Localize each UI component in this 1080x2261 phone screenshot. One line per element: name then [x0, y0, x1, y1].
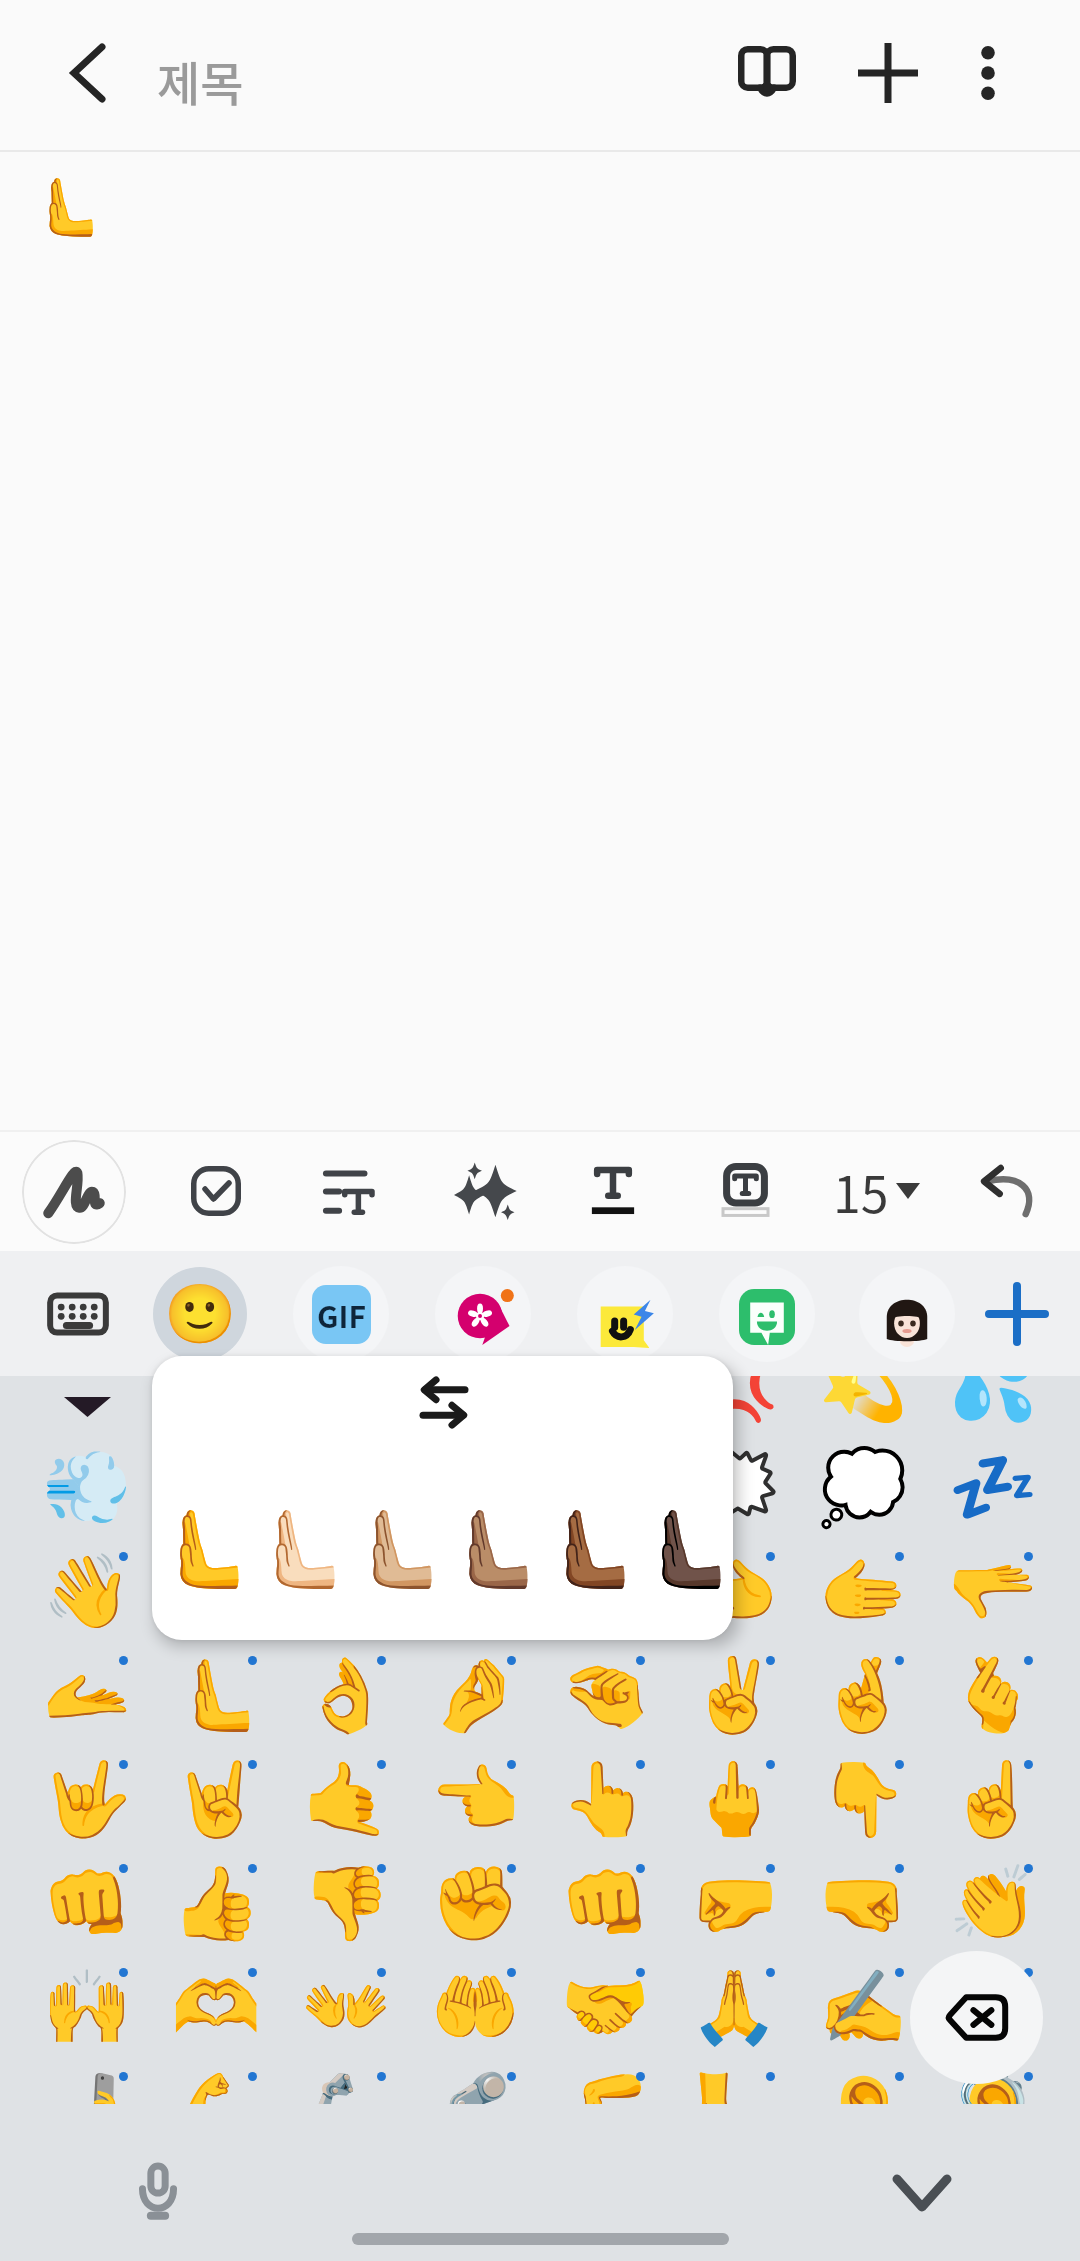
button[interactable]: 💦 [933, 1376, 1053, 1433]
button[interactable]: 🤘 [156, 1749, 276, 1849]
button[interactable]: 🫷🏻 [250, 1499, 346, 1599]
staticText: 🫶 [171, 1965, 261, 2049]
staticText: 🗯️ [689, 1445, 779, 1529]
button[interactable]: 👐 [286, 1957, 406, 2057]
button[interactable]: 🤚 [156, 1541, 276, 1641]
button[interactable]: 🖕 [674, 1749, 794, 1849]
button[interactable]: Checklist [168, 1143, 264, 1239]
button[interactable]: 🙏 [674, 1957, 794, 2057]
button[interactable]: 🫷 [156, 1645, 276, 1745]
button[interactable]: 🖖 [545, 1541, 665, 1641]
staticText: 15 [833, 1155, 889, 1227]
button[interactable]: 🫷🏽 [443, 1499, 539, 1599]
button[interactable]: 🦶 [674, 2061, 794, 2104]
button[interactable]: Voice input [110, 2144, 206, 2240]
staticText: 🙌 [42, 1965, 132, 2049]
button[interactable]: 🤏 [545, 1645, 665, 1745]
button[interactable]: 🤙 [286, 1749, 406, 1849]
button[interactable]: 👈 [415, 1749, 535, 1849]
button[interactable]: 🤞 [803, 1645, 923, 1745]
button[interactable]: ✍️ [803, 1957, 923, 2057]
button[interactable]: Keyboard [30, 1266, 126, 1362]
button[interactable]: 👇 [803, 1749, 923, 1849]
button[interactable]: AR Emoji [859, 1266, 955, 1362]
staticText: 🦵 [560, 2069, 650, 2104]
staticText: 👆 [560, 1757, 650, 1841]
button[interactable]: 👊 [27, 1853, 147, 1953]
button[interactable]: More options [936, 21, 1040, 125]
button[interactable]: 👊 [545, 1853, 665, 1953]
button[interactable]: 🫲 [674, 1541, 794, 1641]
button[interactable]: 🫷 [154, 1499, 250, 1599]
staticText: 🖖 [560, 1549, 650, 1633]
button[interactable]: Text style [565, 1143, 661, 1239]
button[interactable]: 🫷🏾 [540, 1499, 636, 1599]
staticText: 🖐️ [430, 1549, 520, 1633]
button[interactable] [27, 1376, 147, 1433]
button[interactable]: 🦿 [415, 2061, 535, 2104]
button[interactable]: 🤳 [27, 2061, 147, 2104]
button[interactable]: Text box [697, 1143, 793, 1239]
button[interactable]: Hide keyboard [874, 2145, 970, 2241]
button[interactable]: ✌️ [674, 1645, 794, 1745]
button[interactable]: 👋 [27, 1541, 147, 1641]
button[interactable]: 💫 [803, 1376, 923, 1433]
button[interactable]: 💢 [674, 1376, 794, 1433]
button[interactable]: 🤟 [27, 1749, 147, 1849]
button[interactable]: 🫷🏼 [347, 1499, 443, 1599]
button[interactable]: 👆 [545, 1749, 665, 1849]
staticText: 👌 [301, 1653, 391, 1737]
button[interactable]: Stickers [435, 1266, 531, 1362]
staticText: 🖕 [689, 1757, 779, 1841]
button[interactable]: Paragraph style [300, 1143, 396, 1239]
button[interactable]: 👎 [286, 1853, 406, 1953]
button[interactable]: 📱 [933, 1957, 1053, 2057]
button[interactable]: 🦾 [286, 2061, 406, 2104]
button[interactable]: 🫶 [156, 1957, 276, 2057]
staticText: 📱 [948, 1965, 1038, 2049]
button[interactable]: Undo [960, 1143, 1056, 1239]
button[interactable]: Emoji [153, 1267, 247, 1361]
button[interactable]: Back [36, 21, 140, 125]
button[interactable]: 💭 [803, 1437, 923, 1537]
button[interactable]: 🫷🏿 [636, 1499, 732, 1599]
button[interactable]: 💤 [933, 1437, 1053, 1537]
button[interactable]: ✋ [286, 1541, 406, 1641]
button[interactable]: 🖐️ [415, 1541, 535, 1641]
button[interactable]: Switch skin tone [404, 1362, 484, 1442]
button[interactable]: 🫱 [803, 1541, 923, 1641]
button[interactable]: GIF [293, 1266, 389, 1362]
staticText: 🫲 [689, 1549, 779, 1633]
button[interactable]: Font size [820, 1144, 932, 1238]
button[interactable]: 🫴 [27, 1645, 147, 1745]
button[interactable]: ✊ [415, 1853, 535, 1953]
staticText: 🤏 [560, 1653, 650, 1737]
button[interactable]: 🤜 [803, 1853, 923, 1953]
button[interactable]: Add sticker pack [971, 1268, 1063, 1360]
button[interactable]: 🦵 [545, 2061, 665, 2104]
button[interactable]: AI assist [434, 1143, 530, 1239]
button[interactable]: 👂 [803, 2061, 923, 2104]
button[interactable]: Add [836, 21, 940, 125]
button[interactable]: Reading mode [715, 21, 819, 125]
button[interactable]: Messages [719, 1266, 815, 1362]
button[interactable]: 💨 [27, 1437, 147, 1537]
button[interactable]: Handwriting [22, 1140, 126, 1244]
button[interactable]: 👍 [156, 1853, 276, 1953]
button[interactable]: 🤛 [674, 1853, 794, 1953]
button[interactable]: Memo sticker [577, 1266, 673, 1362]
button[interactable]: 🗯️ [674, 1437, 794, 1537]
button[interactable]: 💪 [156, 2061, 276, 2104]
button[interactable]: 👏 [933, 1853, 1053, 1953]
button[interactable]: 🙌 [27, 1957, 147, 2057]
button[interactable]: 🫰 [933, 1645, 1053, 1745]
button[interactable]: 🤌 [415, 1645, 535, 1745]
button[interactable]: Backspace [910, 1951, 1043, 2084]
button[interactable]: 👌 [286, 1645, 406, 1745]
button[interactable]: 🤲 [415, 1957, 535, 2057]
staticText: 🫷 [171, 1653, 261, 1737]
button[interactable]: 🤝 [545, 1957, 665, 2057]
button[interactable]: 🦻 [933, 2061, 1053, 2104]
button[interactable]: ☝️ [933, 1749, 1053, 1849]
button[interactable]: 🫳 [933, 1541, 1053, 1641]
